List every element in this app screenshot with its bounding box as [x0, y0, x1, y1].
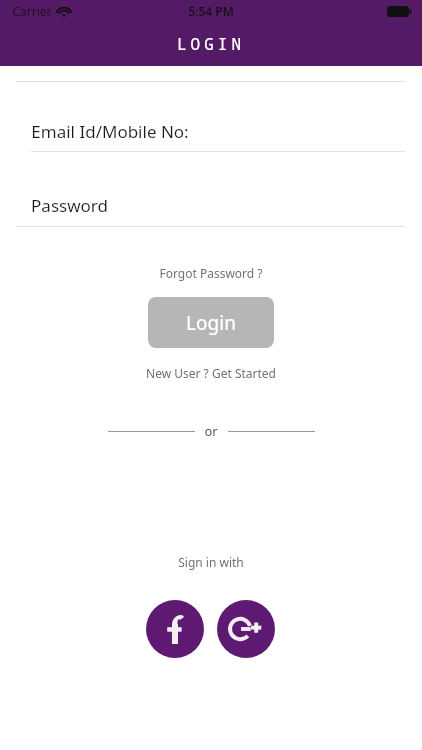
staticText: Email Id/Mobile No: — [31, 120, 189, 143]
staticText: Carrier — [12, 3, 52, 19]
staticText: Password — [31, 194, 108, 217]
staticText: 5:54 PM — [188, 3, 234, 19]
button[interactable]: Email Id/Mobile No: — [0, 110, 422, 152]
button[interactable]: Login — [148, 297, 274, 348]
staticText: or — [204, 422, 218, 440]
staticText: LOGIN — [177, 33, 246, 55]
button[interactable]: Sign in with Google Plus — [217, 600, 275, 658]
button[interactable]: New User ? Get Started — [138, 362, 284, 384]
staticText: New User ? Get Started — [146, 365, 276, 381]
staticText: Forgot Password ? — [159, 265, 263, 281]
staticText: Sign in with — [178, 554, 244, 570]
button[interactable]: Sign in with Facebook — [146, 600, 204, 658]
staticText: Login — [186, 310, 236, 336]
button[interactable]: Password — [0, 184, 422, 226]
button[interactable]: Forgot Password ? — [151, 262, 271, 284]
